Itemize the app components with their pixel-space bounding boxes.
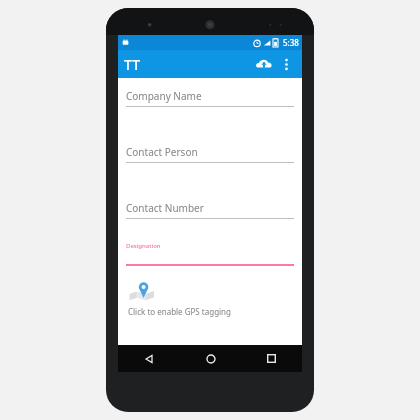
button[interactable]: Contact Person [126, 145, 294, 163]
staticText: Contact Number [126, 201, 204, 215]
staticText: Company Name [126, 89, 202, 103]
button[interactable]: Designation [126, 242, 294, 266]
staticText: 5:38 [283, 37, 299, 48]
button[interactable]: Back [118, 345, 180, 372]
button[interactable]: Company Name [126, 89, 294, 107]
staticText: Designation [126, 242, 161, 250]
button[interactable]: Upload to cloud [252, 52, 276, 76]
staticText: TT [124, 55, 141, 74]
staticText: Click to enable GPS tagging [128, 306, 231, 317]
button[interactable]: Contact Number [126, 201, 294, 219]
button[interactable]: Recent apps [241, 345, 302, 372]
button[interactable]: More options [276, 54, 296, 74]
button[interactable]: Click to enable GPS tagging [126, 281, 294, 317]
button[interactable]: Home [180, 345, 241, 372]
staticText: Contact Person [126, 145, 198, 159]
